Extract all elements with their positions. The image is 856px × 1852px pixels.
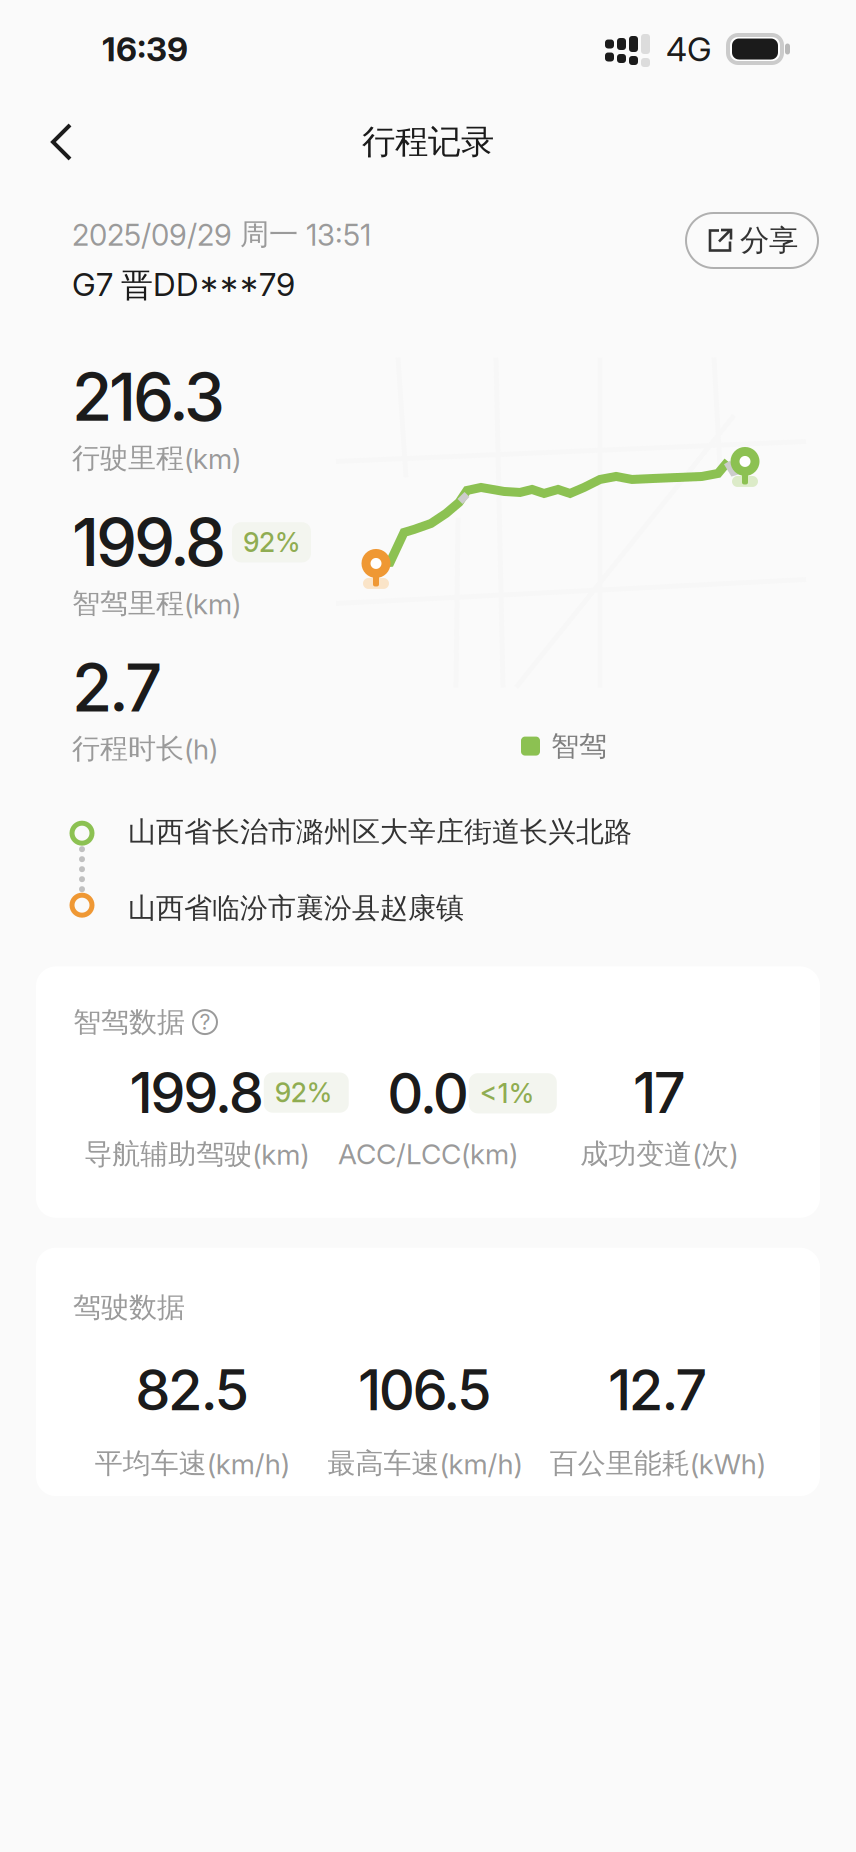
staticText: 4G bbox=[666, 29, 712, 69]
staticText: 216.3 bbox=[72, 357, 225, 436]
staticText: 17 bbox=[633, 1059, 686, 1126]
staticText: ACC/LCC(km) bbox=[338, 1137, 518, 1171]
staticText: 16:39 bbox=[102, 29, 188, 69]
button[interactable]: Back bbox=[30, 110, 94, 174]
staticText: 导航辅助驾驶(km) bbox=[84, 1136, 309, 1172]
staticText: 最高车速(km/h) bbox=[327, 1446, 522, 1481]
staticText: 分享 bbox=[740, 222, 798, 259]
staticText: 行程记录 bbox=[362, 121, 494, 163]
staticText: G7 晋DD***79 bbox=[72, 265, 295, 305]
staticText: 82.5 bbox=[135, 1356, 249, 1424]
staticText: 92% bbox=[275, 1076, 338, 1109]
staticText: 平均车速(km/h) bbox=[95, 1446, 290, 1481]
staticText: 智驾数据 bbox=[73, 1004, 185, 1040]
staticText: 行程时长(h) bbox=[72, 731, 218, 766]
staticText: 2.7 bbox=[72, 648, 162, 727]
staticText: 12.7 bbox=[608, 1356, 707, 1424]
staticText: 驾驶数据 bbox=[73, 1290, 185, 1325]
staticText: 山西省长治市潞州区大辛庄街道长兴北路 bbox=[128, 814, 632, 849]
staticText: ? bbox=[199, 1009, 210, 1035]
staticText: 2025/09/29 周一 13:51 bbox=[72, 216, 371, 253]
staticText: 0.0 bbox=[387, 1059, 469, 1127]
staticText: <1% bbox=[480, 1077, 546, 1109]
staticText: 山西省临汾市襄汾县赵康镇 bbox=[128, 890, 464, 926]
staticText: 百公里能耗(kWh) bbox=[550, 1446, 766, 1481]
staticText: 106.5 bbox=[358, 1356, 492, 1424]
staticText: 199.8 bbox=[130, 1059, 264, 1126]
staticText: 智驾 bbox=[551, 728, 607, 764]
button[interactable]: 分享 bbox=[686, 213, 818, 268]
staticText: 智驾里程(km) bbox=[72, 586, 241, 621]
staticText: 成功变道(次) bbox=[580, 1136, 738, 1172]
staticText: 92% bbox=[243, 526, 300, 558]
staticText: 199.8 bbox=[72, 503, 226, 582]
staticText: 行驶里程(km) bbox=[72, 440, 241, 476]
